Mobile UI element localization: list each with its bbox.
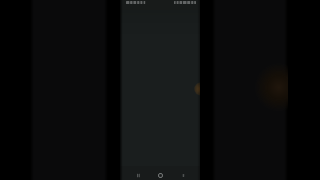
button[interactable]: Home	[152, 166, 168, 180]
button[interactable]: Back	[130, 166, 146, 180]
button[interactable]: Open side panel	[195, 83, 200, 96]
button[interactable]: Next page	[212, 0, 288, 180]
button[interactable]: Recent apps	[175, 166, 191, 180]
